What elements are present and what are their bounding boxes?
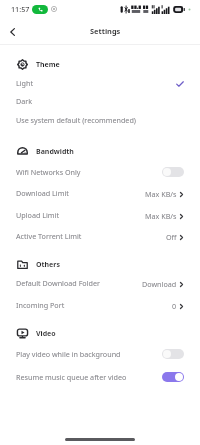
staticText: Incoming Port [16,300,65,310]
staticText: Resume music queue after video [16,372,127,382]
staticText: Wifi Networks Only [16,167,81,177]
staticText: Theme [36,60,60,70]
button[interactable]: Light [0,73,200,94]
staticText: Default Download Folder [16,278,101,288]
staticText: Play video while in background [16,349,121,359]
button[interactable]: Dark [0,91,200,112]
staticText: Max KB/s [145,211,177,221]
staticText: Settings [90,26,121,36]
button[interactable]: Resume music queue after video [0,367,200,388]
staticText: Video [36,329,56,339]
staticText: Others [36,260,60,270]
staticText: Off [166,232,177,242]
button[interactable]: Upload Limit [0,205,200,226]
button[interactable]: Use system default (recommended) [0,110,200,131]
button[interactable]: Incoming Port [0,295,200,316]
staticText: Use system default (recommended) [16,115,136,125]
button[interactable]: Download Limit [0,183,200,204]
staticText: Bandwidth [36,147,74,157]
button[interactable]: Default Download Folder [0,273,200,294]
staticText: 0 [172,301,177,311]
staticText: Max KB/s [145,189,177,199]
staticText: Active Torrent Limit [16,231,82,241]
staticText: Download Limit [16,188,69,198]
button[interactable]: Back [3,23,21,41]
button[interactable]: Wifi Networks Only [0,162,200,183]
staticText: Dark [16,96,33,106]
staticText: Light [16,78,34,88]
staticText: Upload Limit [16,210,59,220]
staticText: Download [142,279,177,289]
button[interactable]: Active Torrent Limit [0,226,200,247]
button[interactable]: Play video while in background [0,344,200,365]
staticText: 11:57 [11,4,30,14]
